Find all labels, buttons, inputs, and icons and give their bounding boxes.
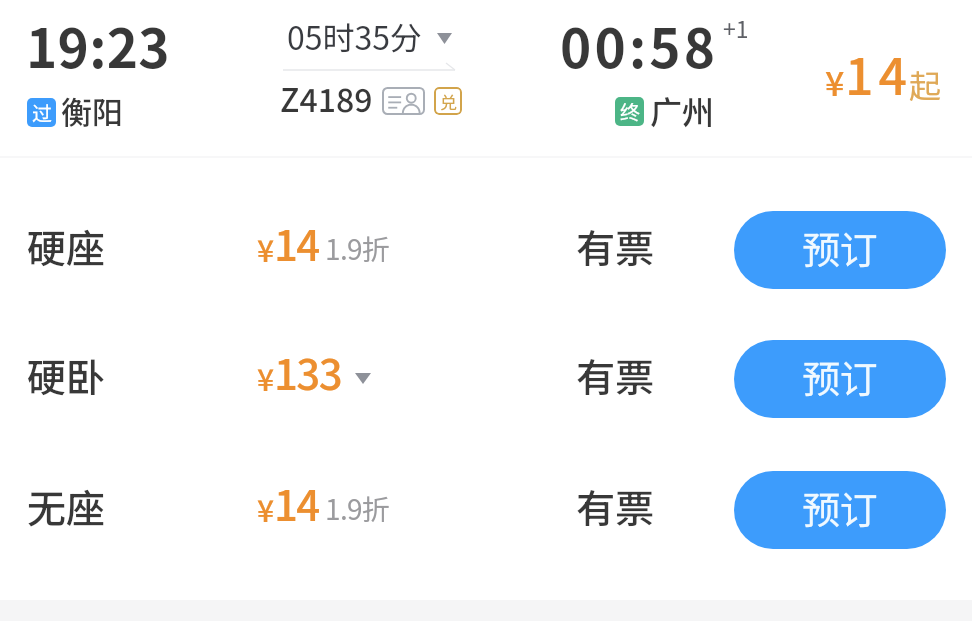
staticText: 133 [274,341,342,402]
staticText: 预订 [802,349,879,404]
button[interactable]: 预订 [734,471,946,549]
other: 终点站 [615,97,644,126]
button[interactable] [0,323,712,435]
staticText: +1 [723,11,749,44]
staticText: 终 [620,97,640,126]
staticText: 广州 [650,87,715,133]
staticText: 过 [32,98,52,127]
button[interactable]: 展开票价明细 [348,360,378,398]
staticText: ¥ [257,356,275,399]
staticText: ¥ [257,487,275,530]
button[interactable] [0,194,712,306]
button[interactable]: 预订 [734,211,946,289]
button[interactable] [0,454,712,566]
staticText: 00:58 [560,7,719,84]
staticText: 19:23 [26,7,170,84]
staticText: 1.9折 [325,228,390,269]
button[interactable]: 展开经停站 [283,14,459,60]
staticText: 硬卧 [27,347,106,403]
staticText: 起 [909,61,942,107]
staticText: 衡阳 [61,88,123,133]
staticText: 无座 [27,478,106,534]
staticText: 1.9折 [325,488,390,529]
staticText: 14 [274,472,319,533]
staticText: 兑 [440,89,457,114]
other: 经过站 [27,98,56,127]
staticText: 硬座 [27,218,106,274]
staticText: 有票 [576,347,655,403]
button[interactable]: 预订 [734,340,946,418]
staticText: ¥ [825,57,845,106]
staticText: 有票 [576,478,655,534]
button[interactable] [0,0,972,156]
staticText: 预订 [802,480,879,535]
staticText: 05时35分 [287,13,423,59]
other: 身份证票 [382,87,425,115]
staticText: ¥ [257,227,275,270]
other: 可兑换积分 [434,87,462,115]
staticText: 有票 [576,218,655,274]
staticText: Z4189 [280,75,373,121]
staticText: 14 [845,37,912,109]
staticText: 预订 [802,220,879,275]
staticText: 14 [274,212,319,273]
